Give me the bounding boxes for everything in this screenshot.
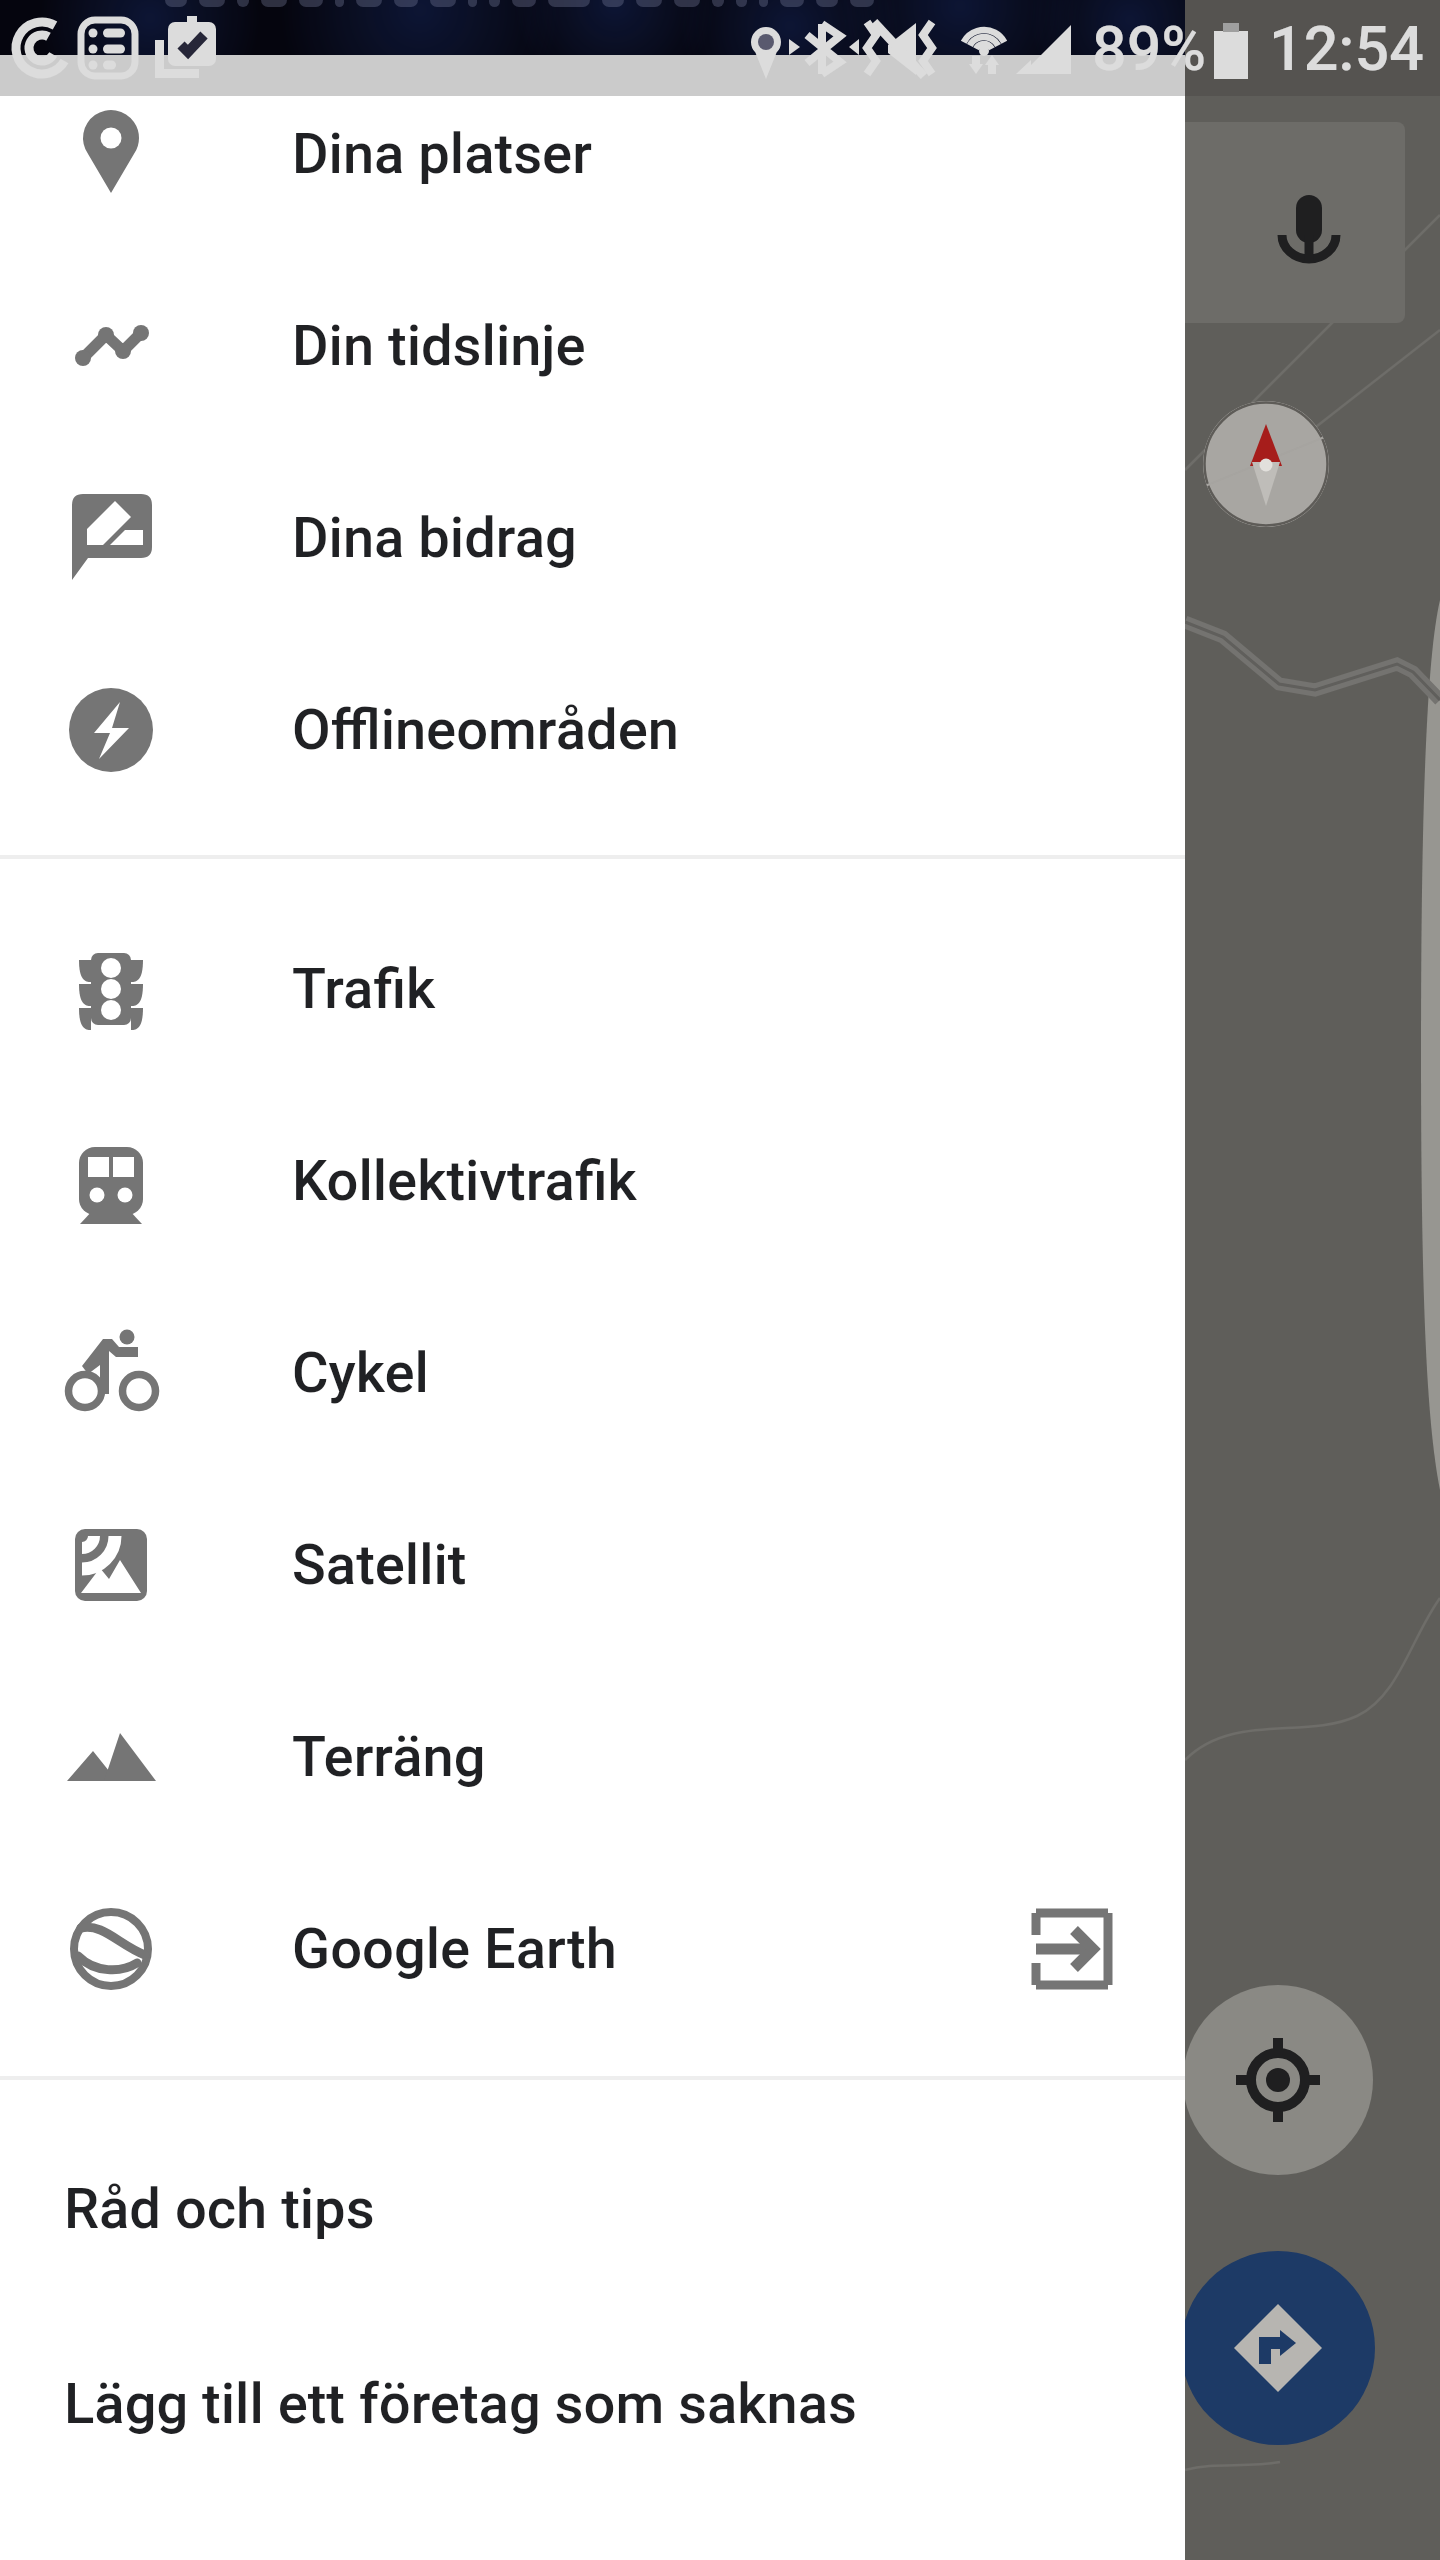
staticText: 12:54	[1269, 13, 1424, 84]
button[interactable]: Voice search	[1165, 122, 1405, 323]
button[interactable]: My location	[1183, 1985, 1373, 2175]
button[interactable]: Google Earth	[0, 1861, 1185, 2037]
button[interactable]: Offlineområden	[0, 642, 1185, 818]
button[interactable]: Directions	[1181, 2251, 1375, 2445]
button[interactable]: Din tidslinje	[0, 258, 1185, 434]
button[interactable]: Råd och tips	[0, 2121, 1185, 2297]
button[interactable]: Dina platser	[0, 66, 1185, 242]
button[interactable]: Open Google Earth app	[1002, 1879, 1142, 2019]
button[interactable]: Kollektivtrafik	[0, 1093, 1185, 1269]
staticText: Offlineområden	[292, 697, 679, 763]
button[interactable]: Satellit	[0, 1477, 1185, 1653]
button[interactable]: Terräng	[0, 1669, 1185, 1845]
staticText: 89%	[1092, 13, 1207, 84]
button[interactable]: Compass	[1203, 401, 1329, 527]
staticText: Cykel	[292, 1340, 429, 1406]
staticText: Trafik	[292, 956, 436, 1022]
staticText: Google Earth	[292, 1916, 617, 1982]
button[interactable]: Lägg till ett företag som saknas	[0, 2316, 1185, 2492]
staticText: Kollektivtrafik	[292, 1148, 637, 1214]
staticText: Terräng	[292, 1724, 486, 1790]
button[interactable]: Trafik	[0, 901, 1185, 1077]
button[interactable]: Cykel	[0, 1285, 1185, 1461]
button[interactable]: Dina bidrag	[0, 450, 1185, 626]
staticText: Din tidslinje	[292, 313, 586, 379]
staticText: Dina platser	[292, 121, 592, 187]
staticText: Satellit	[292, 1532, 467, 1598]
staticText: Lägg till ett företag som saknas	[64, 2371, 857, 2437]
staticText: Dina bidrag	[292, 505, 577, 571]
staticText: Råd och tips	[64, 2176, 375, 2242]
